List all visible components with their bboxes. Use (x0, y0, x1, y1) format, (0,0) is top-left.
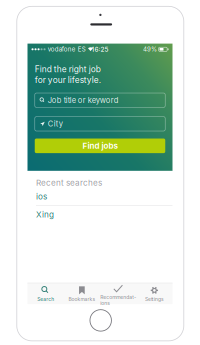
staticText: Recent searches (36, 178, 102, 188)
button[interactable]: Job title or keyword (35, 93, 165, 107)
staticText: 49% (143, 46, 157, 53)
staticText: Find the right job (35, 64, 101, 74)
button[interactable]: ios (27, 188, 172, 205)
button[interactable]: City (35, 117, 165, 131)
button[interactable]: Search (27, 283, 64, 304)
staticText: for your lifestyle. (35, 75, 101, 85)
staticText: vodafone ES (48, 46, 86, 53)
staticText: ios (36, 192, 47, 201)
button[interactable]: Xing (27, 206, 172, 223)
button[interactable]: Recommendations (100, 283, 136, 304)
button[interactable]: Bookmarks (64, 283, 100, 304)
button[interactable]: Find jobs (35, 138, 165, 153)
staticText: City (48, 119, 63, 128)
staticText: Recommendations (100, 294, 136, 306)
staticText: Find jobs (82, 141, 117, 151)
button[interactable]: Settings (136, 283, 172, 304)
staticText: Settings (145, 296, 164, 302)
staticText: Search (37, 296, 54, 302)
staticText: Bookmarks (68, 296, 95, 302)
staticText: 16:25 (91, 45, 108, 53)
staticText: Job title or keyword (48, 96, 119, 105)
staticText: Xing (36, 210, 54, 219)
